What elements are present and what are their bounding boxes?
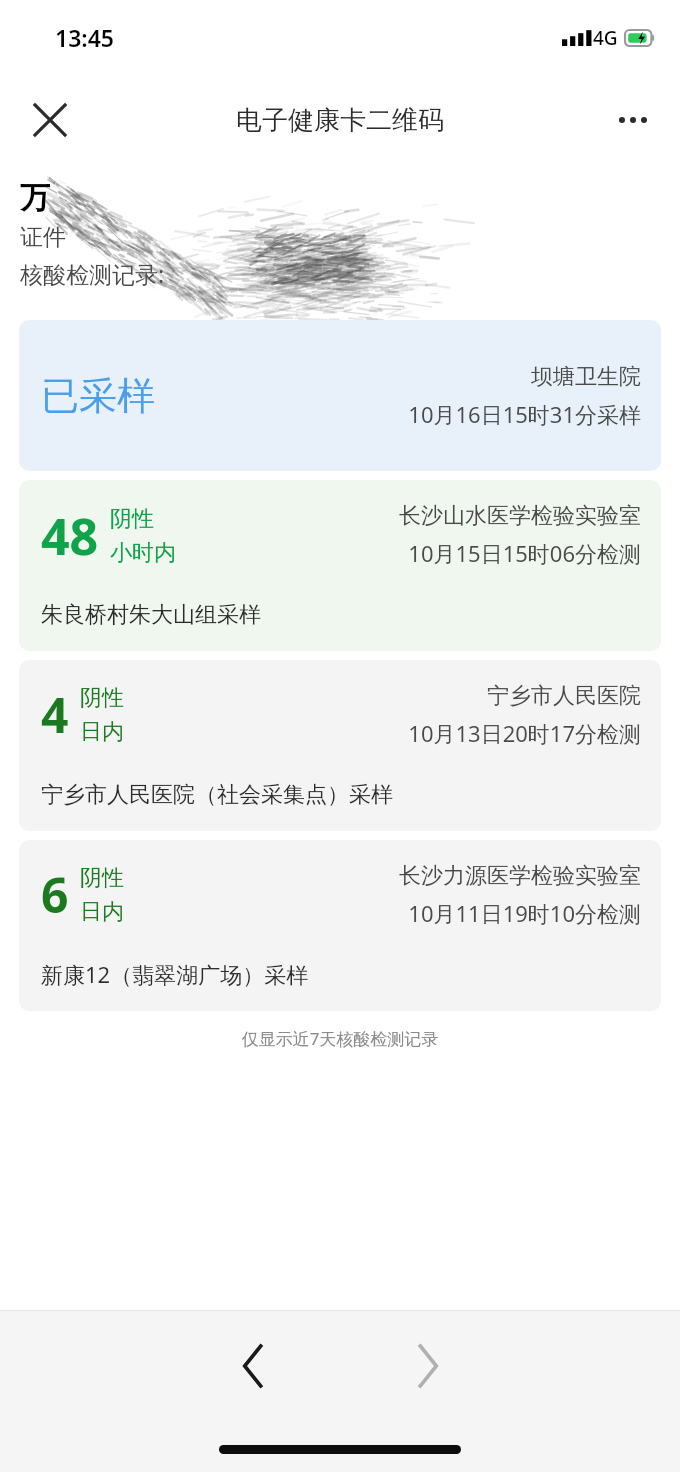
- staticText: 核酸检测记录:: [20, 258, 165, 289]
- staticText: 48: [41, 502, 99, 570]
- staticText: 宁乡市人民医院（社会采集点）采样: [41, 781, 393, 809]
- staticText: 4: [41, 682, 69, 747]
- staticText: 阴性: [110, 505, 154, 533]
- button[interactable]: Back: [208, 1331, 298, 1401]
- button[interactable]: Close: [25, 95, 75, 145]
- staticText: 10月15日15时06分检测: [408, 538, 641, 568]
- staticText: 10月11日19时10分检测: [408, 898, 641, 928]
- staticText: 小时内: [110, 539, 176, 567]
- staticText: 证件: [20, 223, 66, 252]
- staticText: 日内: [80, 718, 124, 746]
- button[interactable]: 48: [19, 480, 661, 651]
- staticText: 电子健康卡二维码: [236, 104, 444, 137]
- staticText: 6: [41, 862, 69, 927]
- staticText: 万: [20, 179, 50, 217]
- staticText: 阴性: [80, 684, 124, 712]
- staticText: 坝塘卫生院: [531, 363, 641, 391]
- button[interactable]: 4: [19, 660, 661, 831]
- button[interactable]: 已采样: [19, 320, 661, 471]
- button[interactable]: More options: [608, 95, 658, 145]
- staticText: 10月13日20时17分检测: [408, 718, 641, 748]
- staticText: 10月16日15时31分采样: [408, 399, 641, 429]
- button[interactable]: Forward: [383, 1331, 473, 1401]
- staticText: 13:45: [55, 22, 114, 53]
- staticText: 朱良桥村朱大山组采样: [41, 601, 261, 629]
- staticText: 阴性: [80, 864, 124, 892]
- staticText: 日内: [80, 898, 124, 926]
- staticText: 长沙力源医学检验实验室: [399, 862, 641, 890]
- staticText: 4G: [593, 25, 618, 51]
- staticText: 宁乡市人民医院: [487, 682, 641, 710]
- button[interactable]: 6: [19, 840, 661, 1011]
- staticText: 已采样: [41, 372, 155, 420]
- staticText: 仅显示近7天核酸检测记录: [0, 1027, 680, 1050]
- staticText: 长沙山水医学检验实验室: [399, 502, 641, 530]
- staticText: 新康12（翡翠湖广场）采样: [41, 959, 309, 989]
